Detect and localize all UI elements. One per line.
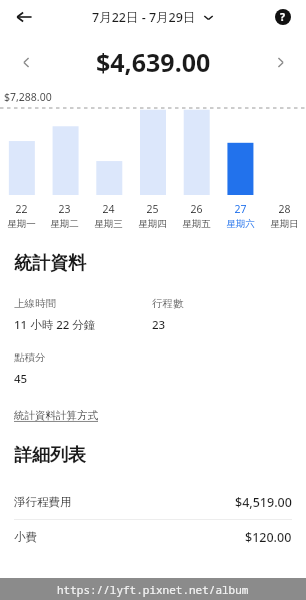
button[interactable]: 25 [130,202,174,230]
staticText: 23 [152,317,166,333]
staticText: 23 [58,202,71,216]
staticText: 行程數 [152,297,184,310]
button[interactable]: Previous week [12,48,40,76]
staticText: 45 [14,371,28,387]
staticText: 上線時間 [14,297,56,310]
staticText: 星期六 [226,218,255,230]
staticText: 點積分 [14,351,46,364]
staticText: 星期五 [182,218,211,230]
button[interactable]: 24 [86,202,130,230]
staticText: 星期三 [94,218,123,230]
staticText: $120.00 [245,529,292,546]
staticText: 7月22日 - 7月29日 [92,9,196,26]
staticText: 星期一 [7,218,36,230]
staticText: 淨行程費用 [14,495,72,509]
button[interactable]: 統計資料計算方式 [14,409,98,422]
button[interactable]: Back [8,1,40,33]
staticText: 統計資料 [14,252,86,275]
staticText: 11 小時 22 分鐘 [14,317,96,333]
staticText: 28 [278,202,291,216]
button[interactable]: 淨行程費用 [0,485,306,519]
button[interactable]: Help [270,4,296,30]
staticText: https://lyft.pixnet.net/album [57,582,249,597]
button[interactable]: 23 [43,202,86,230]
staticText: $4,519.00 [235,494,292,511]
staticText: 星期四 [138,218,167,230]
button[interactable]: 小費 [0,520,306,554]
button[interactable]: 7月22日 - 7月29日 [92,9,214,26]
staticText: 統計資料計算方式 [14,409,98,422]
staticText: 星期日 [270,218,299,230]
staticText: 22 [15,202,28,216]
button[interactable]: 28 [262,202,306,230]
staticText: $7,288.00 [4,90,52,104]
staticText: 25 [146,202,159,216]
staticText: 小費 [14,530,37,544]
button[interactable]: Next week [266,48,294,76]
staticText: $4,639.00 [96,45,211,79]
button[interactable]: 27 [218,202,262,230]
staticText: ? [280,10,286,24]
staticText: 星期二 [50,218,79,230]
staticText: 24 [102,202,115,216]
button[interactable]: 26 [174,202,218,230]
button[interactable]: 22 [0,202,43,230]
staticText: 27 [234,202,247,216]
staticText: 詳細列表 [14,444,86,467]
staticText: 26 [190,202,203,216]
